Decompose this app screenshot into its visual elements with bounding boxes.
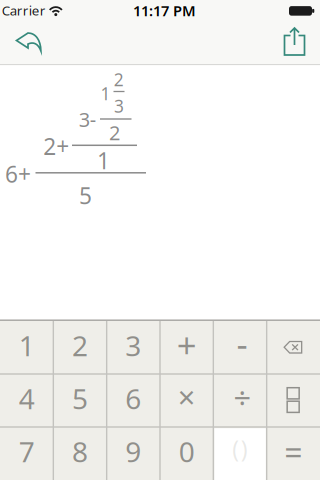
staticText: 0 bbox=[179, 433, 195, 470]
button[interactable]: Undo bbox=[4, 24, 48, 60]
staticText: + bbox=[177, 322, 197, 368]
button[interactable]: ÷ bbox=[217, 372, 268, 423]
button[interactable]: 6 bbox=[108, 373, 159, 424]
button[interactable]: - bbox=[216, 318, 268, 369]
staticText: 6 bbox=[125, 380, 141, 417]
button[interactable]: Fraction bbox=[268, 375, 319, 426]
staticText: 2 bbox=[109, 119, 120, 146]
staticText: ) bbox=[241, 433, 248, 464]
staticText: 8 bbox=[72, 433, 88, 470]
staticText: ( bbox=[232, 433, 239, 464]
button[interactable]: 3 bbox=[108, 320, 159, 371]
button[interactable]: 9 bbox=[108, 426, 159, 477]
staticText: 2 bbox=[72, 327, 88, 364]
button[interactable]: 7 bbox=[1, 426, 52, 477]
button[interactable]: + bbox=[161, 319, 212, 370]
staticText: 3- bbox=[79, 106, 96, 132]
staticText: 1 bbox=[100, 82, 110, 105]
staticText: 3 bbox=[114, 94, 124, 117]
button[interactable]: Delete bbox=[268, 322, 319, 373]
staticText: ÷ bbox=[233, 377, 251, 418]
button[interactable]: 0 bbox=[161, 426, 212, 477]
button[interactable]: Parentheses bbox=[214, 428, 266, 479]
staticText: 1 bbox=[19, 327, 35, 364]
button[interactable]: 2 bbox=[54, 320, 106, 371]
button[interactable]: = bbox=[268, 426, 319, 477]
button[interactable]: 5 bbox=[54, 373, 106, 424]
staticText: 7 bbox=[19, 433, 35, 470]
button[interactable]: Share bbox=[276, 24, 312, 58]
staticText: 9 bbox=[125, 433, 141, 470]
staticText: = bbox=[284, 431, 302, 473]
button[interactable]: 4 bbox=[1, 373, 52, 424]
button[interactable]: × bbox=[161, 371, 212, 422]
button[interactable]: 8 bbox=[54, 426, 106, 477]
staticText: 2 bbox=[114, 68, 124, 91]
staticText: 11:17 PM bbox=[133, 1, 196, 20]
staticText: 5 bbox=[79, 180, 92, 210]
staticText: Carrier bbox=[2, 1, 46, 19]
staticText: 4 bbox=[19, 380, 35, 417]
staticText: 1 bbox=[97, 145, 110, 175]
staticText: × bbox=[178, 376, 196, 417]
staticText: 6+ bbox=[5, 159, 31, 189]
staticText: 3 bbox=[125, 327, 141, 364]
staticText: - bbox=[236, 320, 247, 366]
staticText: 2+ bbox=[43, 131, 69, 161]
button[interactable]: 1 bbox=[1, 320, 52, 371]
staticText: 5 bbox=[72, 380, 88, 417]
